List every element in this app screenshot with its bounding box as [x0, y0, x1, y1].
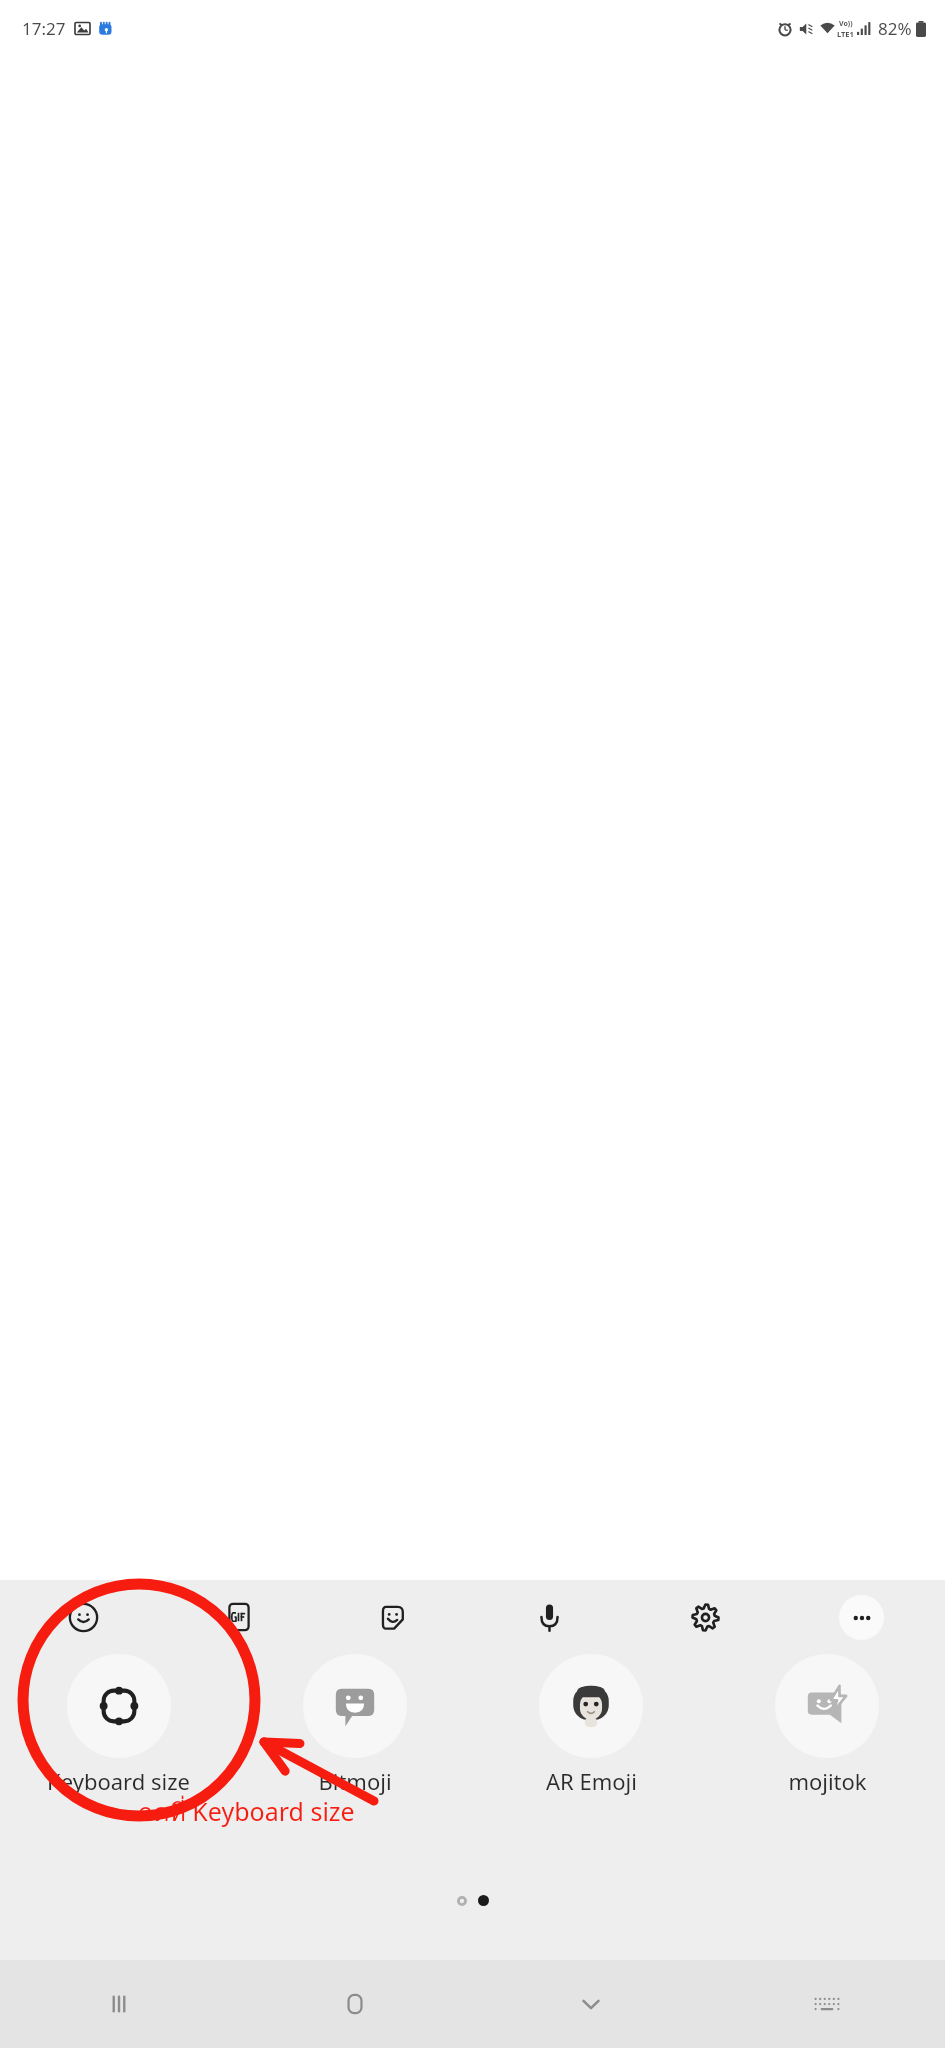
staticText: 82%: [878, 17, 912, 40]
staticText: Bitmoji: [318, 1766, 392, 1796]
button[interactable]: Stickers: [316, 1588, 471, 1646]
button[interactable]: Hide keyboard: [473, 1960, 709, 2048]
staticText: 17:27: [22, 17, 66, 40]
button[interactable]: Settings: [627, 1588, 783, 1646]
button[interactable]: More options: [839, 1595, 884, 1640]
staticText: Keyboard size: [47, 1766, 190, 1796]
staticText: AR Emoji: [546, 1766, 637, 1796]
button[interactable]: Keyboard size: [0, 1654, 237, 1796]
button[interactable]: AR Emoji: [473, 1654, 709, 1796]
button[interactable]: Switch keyboard: [709, 1960, 945, 2048]
button[interactable]: GIF: [161, 1588, 316, 1646]
button[interactable]: Bitmoji: [237, 1654, 473, 1796]
staticText: LTE1: [837, 29, 854, 39]
button[interactable]: mojitok: [709, 1654, 945, 1796]
staticText: mojitok: [788, 1766, 867, 1796]
staticText: Vo)): [839, 19, 853, 29]
staticText: กดที่ Keyboard size: [138, 1792, 355, 1832]
button[interactable]: Voice input: [471, 1588, 627, 1646]
button[interactable]: Home: [237, 1960, 473, 2048]
button[interactable]: Emoji: [6, 1588, 161, 1646]
button[interactable]: Recents: [0, 1960, 237, 2048]
